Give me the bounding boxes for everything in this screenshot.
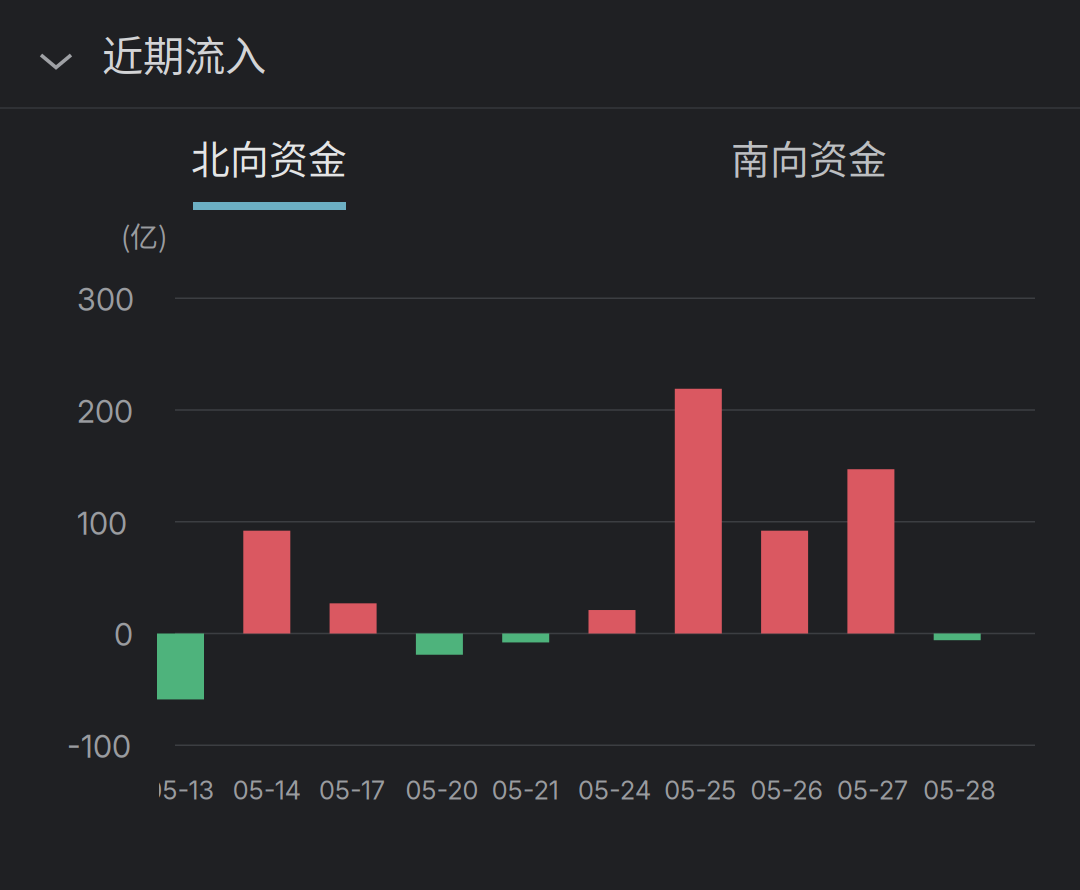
staticText: 05-28 <box>923 775 995 806</box>
staticText: 05-25 <box>664 775 736 806</box>
button[interactable]: 近期流入 <box>0 0 1080 106</box>
staticText: 05-20 <box>405 775 478 806</box>
staticText: (亿) <box>121 215 167 255</box>
staticText: 05-13 <box>146 775 214 806</box>
staticText: 0 <box>114 616 133 653</box>
staticText: 05-14 <box>233 775 301 806</box>
staticText: 05-17 <box>319 775 385 806</box>
staticText: 近期流入 <box>102 23 266 83</box>
staticText: 南向资金 <box>731 129 887 185</box>
staticText: 200 <box>77 393 133 430</box>
staticText: 05-24 <box>578 775 651 806</box>
staticText: 05-26 <box>751 775 823 806</box>
button[interactable]: 南向资金 <box>704 109 914 205</box>
staticText: -100 <box>67 728 131 765</box>
staticText: 100 <box>77 505 127 542</box>
staticText: 北向资金 <box>191 129 347 185</box>
button[interactable]: 北向资金 <box>164 109 374 205</box>
staticText: 05-27 <box>837 775 908 806</box>
staticText: 300 <box>77 281 134 318</box>
staticText: 05-21 <box>492 775 559 806</box>
